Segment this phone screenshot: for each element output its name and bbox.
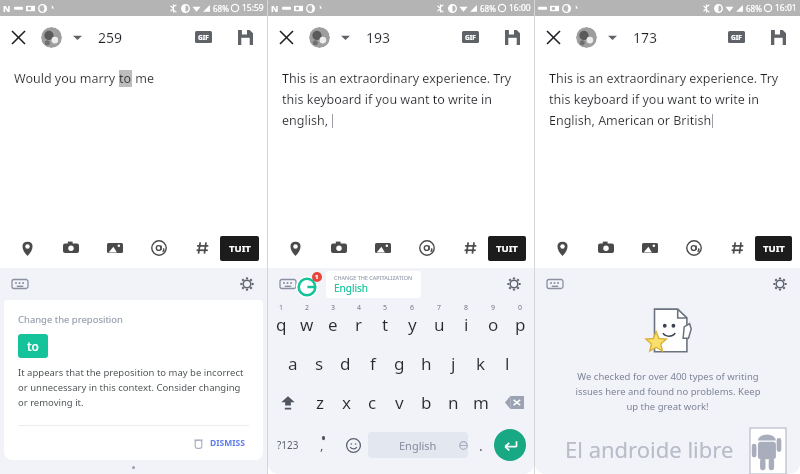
- button[interactable]: 0: [507, 300, 534, 344]
- button[interactable]: Account: [304, 22, 334, 52]
- button[interactable]: 3: [320, 300, 346, 344]
- button[interactable]: .: [468, 422, 494, 468]
- button[interactable]: Location: [278, 231, 312, 265]
- button[interactable]: Hashtag: [721, 231, 755, 265]
- button[interactable]: x: [333, 383, 359, 422]
- staticText: ?123: [277, 438, 299, 452]
- button[interactable]: Settings: [502, 272, 526, 296]
- button[interactable]: Keyboard: [8, 272, 32, 296]
- button[interactable]: Hashtag: [454, 231, 488, 265]
- button[interactable]: DISMISS: [189, 431, 249, 455]
- button[interactable]: 5: [372, 300, 399, 344]
- button[interactable]: b: [413, 383, 440, 422]
- staticText: 3: [331, 303, 336, 313]
- staticText: l: [505, 352, 510, 375]
- button[interactable]: j: [440, 344, 467, 383]
- button[interactable]: ?123: [268, 422, 308, 468]
- button[interactable]: Settings: [235, 272, 259, 296]
- button[interactable]: Save draft: [762, 21, 794, 53]
- button[interactable]: Voice input: [308, 422, 338, 468]
- staticText: x: [342, 391, 351, 414]
- button[interactable]: Location: [545, 231, 579, 265]
- button[interactable]: 7: [426, 300, 453, 344]
- staticText: English, American or British: [549, 112, 712, 129]
- button[interactable]: a: [280, 344, 306, 383]
- staticText: s: [315, 352, 324, 375]
- button[interactable]: Gallery: [98, 231, 132, 265]
- button[interactable]: d: [332, 344, 359, 383]
- button[interactable]: CHANGE THE CAPITALIZATION: [334, 274, 413, 295]
- button[interactable]: Account: [36, 22, 66, 52]
- staticText: or removing it.: [18, 396, 84, 409]
- button[interactable]: Settings: [768, 272, 792, 296]
- button[interactable]: s: [306, 344, 332, 383]
- button[interactable]: Hashtag: [186, 231, 220, 265]
- staticText: Would you marry: [14, 70, 119, 87]
- button[interactable]: Mention: [677, 231, 711, 265]
- button[interactable]: Gallery: [633, 231, 667, 265]
- button[interactable]: 8: [453, 300, 480, 344]
- button[interactable]: Save draft: [496, 21, 528, 53]
- button[interactable]: Close: [0, 19, 36, 55]
- button[interactable]: to: [27, 338, 39, 354]
- button[interactable]: h: [413, 344, 440, 383]
- button[interactable]: m: [467, 383, 494, 422]
- button[interactable]: English: [368, 432, 468, 458]
- button[interactable]: 9: [480, 300, 507, 344]
- button[interactable]: Close: [268, 19, 304, 55]
- button[interactable]: Account: [571, 22, 601, 52]
- button[interactable]: 6: [399, 300, 426, 344]
- button[interactable]: Gallery: [366, 231, 400, 265]
- button[interactable]: Emoji: [338, 422, 368, 468]
- button[interactable]: Camera: [54, 231, 88, 265]
- button[interactable]: Dropdown: [66, 26, 88, 48]
- staticText: TUIT: [229, 242, 251, 255]
- button[interactable]: Close: [535, 19, 571, 55]
- button[interactable]: Mention: [410, 231, 444, 265]
- button[interactable]: GIF: [187, 21, 219, 53]
- staticText: 173: [633, 28, 658, 47]
- staticText: N: [3, 2, 11, 14]
- staticText: 15:59: [242, 2, 264, 14]
- button[interactable]: Keyboard: [276, 272, 300, 296]
- button[interactable]: k: [467, 344, 494, 383]
- staticText: English: [334, 281, 369, 295]
- button[interactable]: Location: [10, 231, 44, 265]
- button[interactable]: Shift: [268, 383, 307, 422]
- staticText: 16:01: [775, 2, 797, 14]
- button[interactable]: Camera: [322, 231, 356, 265]
- button[interactable]: Keyboard: [543, 272, 567, 296]
- button[interactable]: Backspace: [494, 383, 534, 422]
- button[interactable]: Camera: [589, 231, 623, 265]
- button[interactable]: c: [359, 383, 386, 422]
- button[interactable]: Enter: [494, 429, 526, 461]
- staticText: b: [421, 391, 432, 414]
- staticText: 6: [410, 303, 415, 313]
- button[interactable]: g: [386, 344, 413, 383]
- button[interactable]: 4: [346, 300, 372, 344]
- button[interactable]: l: [494, 344, 521, 383]
- staticText: 7: [437, 303, 442, 313]
- button[interactable]: GIF: [454, 21, 486, 53]
- button[interactable]: v: [386, 383, 413, 422]
- staticText: j: [451, 352, 456, 375]
- button[interactable]: 1: [268, 300, 294, 344]
- staticText: m: [473, 391, 489, 414]
- button[interactable]: TUIT: [220, 236, 259, 261]
- button[interactable]: z: [307, 383, 333, 422]
- button[interactable]: TUIT: [755, 236, 792, 261]
- button[interactable]: Mention: [142, 231, 176, 265]
- staticText: 68%: [746, 3, 762, 14]
- button[interactable]: 2: [294, 300, 320, 344]
- button[interactable]: Dropdown: [334, 26, 356, 48]
- button[interactable]: f: [359, 344, 386, 383]
- staticText: TUIT: [496, 242, 518, 255]
- staticText: r: [355, 313, 363, 336]
- staticText: 0: [518, 303, 523, 313]
- button[interactable]: TUIT: [488, 236, 526, 261]
- button[interactable]: Dropdown: [601, 26, 623, 48]
- button[interactable]: Grammarly: [296, 276, 318, 298]
- button[interactable]: GIF: [720, 21, 752, 53]
- button[interactable]: n: [440, 383, 467, 422]
- button[interactable]: Save draft: [229, 21, 261, 53]
